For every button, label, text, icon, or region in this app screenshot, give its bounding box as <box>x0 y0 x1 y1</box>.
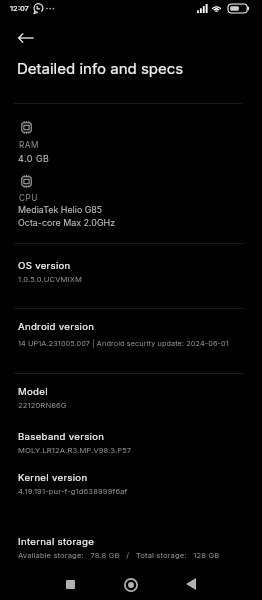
staticText: 4.19.191-pur-f-g1d638999f6af <box>18 487 128 496</box>
staticText: Available storage: 78.8 GB / Total stora… <box>18 551 220 560</box>
staticText: 12:07 <box>10 4 29 13</box>
staticText: Model <box>18 386 48 398</box>
staticText: 22120RN86G <box>18 401 67 410</box>
staticText: OS version <box>18 260 71 272</box>
staticText: Octa-core Max 2.0GHz <box>18 217 116 228</box>
staticText: Android version <box>18 321 95 333</box>
staticText: Baseband version <box>18 431 105 443</box>
staticText: Detailed info and specs <box>17 59 184 77</box>
staticText: RAM <box>19 140 39 150</box>
button[interactable]: Android version <box>0 321 262 348</box>
button[interactable]: Home <box>121 575 141 595</box>
staticText: MOLY.LR12A.R3.MP.V98.3.P57 <box>18 446 132 455</box>
staticText: 14 UP1A.231005.007 | Android security up… <box>18 339 229 348</box>
staticText: Internal storage <box>18 536 95 548</box>
button[interactable]: Recents <box>60 574 80 594</box>
button[interactable]: Kernel version <box>0 472 262 496</box>
staticText: 4.0 GB <box>18 153 50 164</box>
staticText: 1.0.5.0.UCVMIXM <box>18 275 83 284</box>
staticText: Kernel version <box>18 472 88 484</box>
button[interactable]: Internal storage <box>0 536 262 560</box>
button[interactable]: Baseband version <box>0 431 262 455</box>
button[interactable]: OS version <box>0 260 262 284</box>
button[interactable]: Back <box>12 24 40 52</box>
button[interactable]: Back <box>181 574 201 594</box>
staticText: CPU <box>19 193 38 203</box>
staticText: MediaTek Helio G85 <box>18 204 103 215</box>
button[interactable]: Model <box>0 386 262 410</box>
